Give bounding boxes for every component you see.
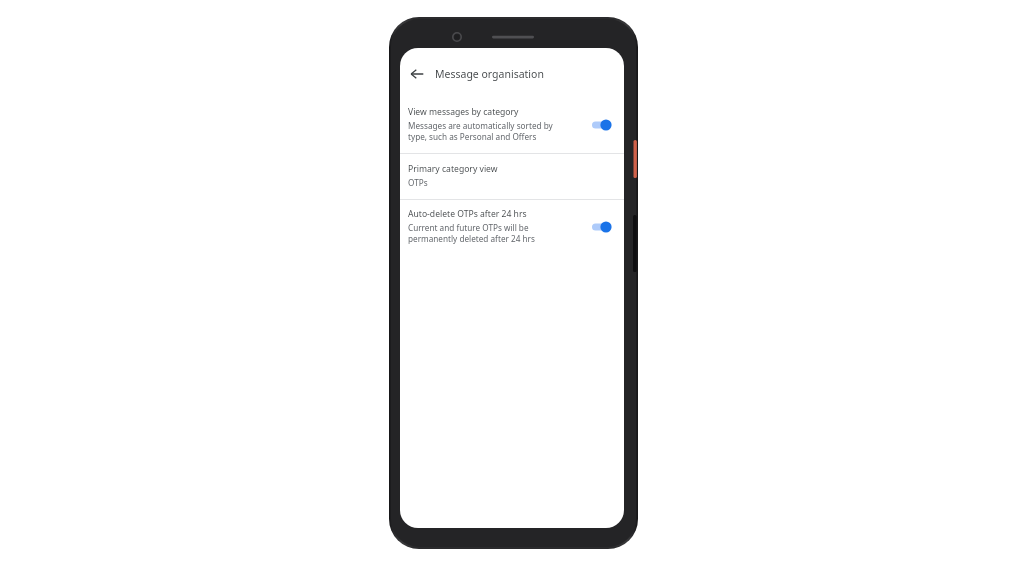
button[interactable]: Toggle setting — [591, 219, 615, 235]
staticText: Message organisation — [435, 67, 544, 81]
button[interactable]: Toggle setting — [591, 117, 615, 133]
staticText: Primary category view — [408, 163, 498, 175]
button[interactable]: Primary category view — [400, 154, 624, 199]
staticText: View messages by category — [408, 106, 519, 118]
staticText: OTPs — [408, 177, 428, 188]
staticText: Current and future OTPs will be permanen… — [408, 222, 535, 245]
staticText: Messages are automatically sorted by typ… — [408, 120, 553, 143]
button[interactable]: Back — [402, 59, 432, 89]
button[interactable]: View messages by category — [400, 100, 624, 153]
button[interactable]: Auto-delete OTPs after 24 hrs — [400, 200, 624, 255]
staticText: Auto-delete OTPs after 24 hrs — [408, 208, 527, 220]
